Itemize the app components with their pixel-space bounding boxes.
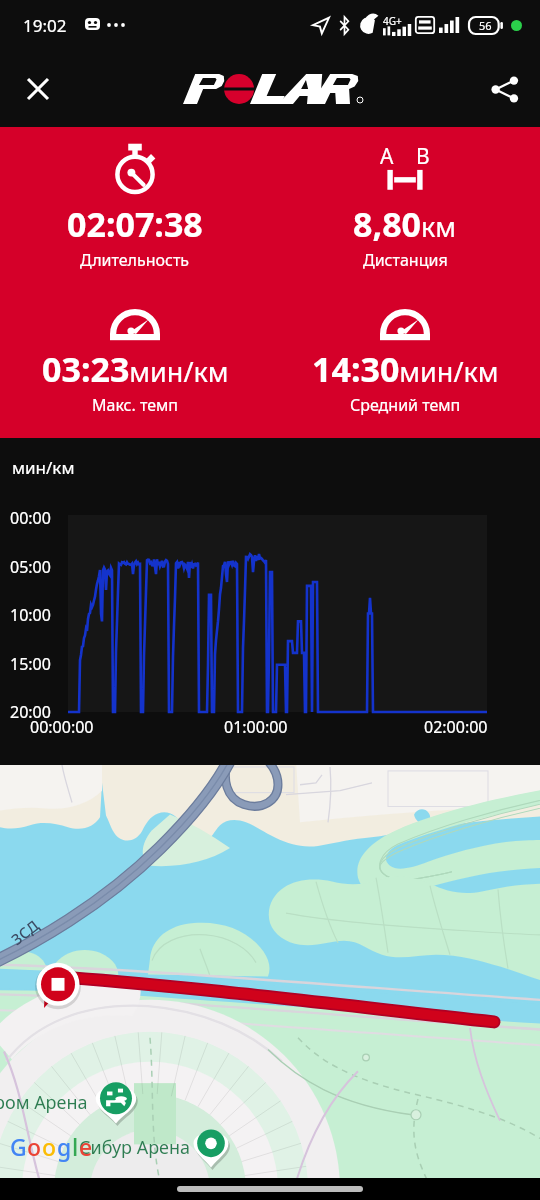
staticText: ЗСД [7, 915, 43, 949]
staticText: ром Арена [0, 1090, 88, 1115]
staticText: 05:00 [10, 556, 51, 578]
staticText: мин/км [12, 456, 75, 479]
staticText: 56 [479, 18, 492, 33]
staticText: B [416, 142, 430, 171]
staticText: 01:00:00 [224, 716, 288, 738]
staticText: 00:00:00 [30, 716, 94, 738]
staticText: o [27, 1131, 42, 1162]
button[interactable]: Route map [0, 765, 540, 1178]
staticText: 20:00 [10, 701, 51, 723]
staticText: Дистанция [363, 249, 448, 271]
staticText: 03:23мин/км [42, 346, 229, 392]
staticText: Длительность [80, 249, 190, 271]
button[interactable]: Close [10, 61, 66, 117]
staticText: 14:30мин/км [312, 346, 499, 392]
staticText: 8,80км [353, 201, 457, 247]
staticText: 10:00 [10, 604, 51, 626]
staticText: o [42, 1131, 57, 1162]
staticText: e [79, 1131, 93, 1162]
staticText: 4G+ [383, 14, 402, 28]
button[interactable]: Share [476, 61, 532, 117]
button[interactable]: A [270, 141, 540, 271]
staticText: Средний темп [350, 394, 461, 416]
staticText: A [380, 142, 394, 171]
staticText: g [57, 1131, 72, 1162]
staticText: 02:07:38 [67, 201, 203, 247]
staticText: l [72, 1131, 79, 1162]
staticText: 15:00 [10, 653, 51, 675]
staticText: G [10, 1131, 27, 1162]
button[interactable]: 03:23мин/км [0, 286, 270, 416]
staticText: Макс. темп [92, 394, 179, 416]
staticText: 19:02 [23, 14, 67, 37]
staticText: 00:00 [10, 507, 51, 529]
staticText: Сибур Арена [79, 1135, 191, 1160]
button[interactable]: 02:07:38 [0, 141, 270, 271]
button[interactable]: 14:30мин/км [270, 286, 540, 416]
staticText: 02:00:00 [424, 716, 488, 738]
